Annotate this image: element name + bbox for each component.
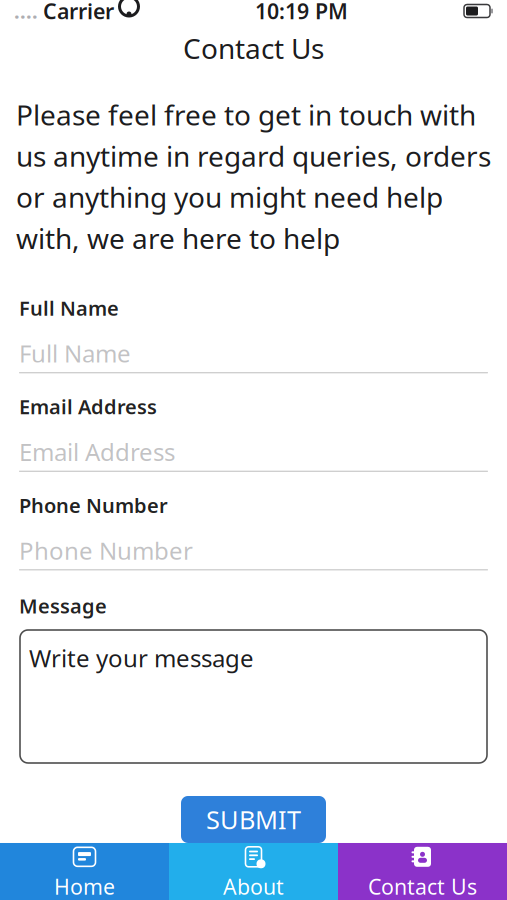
staticText: Contact Us — [368, 872, 477, 900]
staticText: Email Address — [19, 393, 157, 420]
staticText: Phone Number — [19, 534, 193, 566]
button[interactable]: Home — [0, 843, 169, 900]
staticText: .... — [14, 0, 38, 24]
button[interactable]: Email Address — [0, 420, 507, 472]
staticText: Write your message — [29, 642, 254, 674]
staticText: Carrier — [43, 0, 114, 25]
button[interactable]: Full Name — [0, 321, 507, 373]
staticText: 10:19 PM — [255, 0, 348, 25]
staticText: About — [223, 872, 284, 900]
staticText: Home — [54, 872, 115, 900]
button[interactable]: Contact Us — [338, 843, 507, 900]
staticText: Phone Number — [19, 492, 168, 518]
staticText: Message — [19, 592, 107, 619]
staticText: Please feel free to get in touch with us… — [16, 96, 491, 257]
button[interactable]: About — [169, 843, 338, 900]
staticText: SUBMIT — [206, 803, 301, 836]
staticText: Full Name — [19, 295, 119, 321]
staticText: Full Name — [19, 337, 131, 369]
button[interactable]: SUBMIT — [181, 796, 326, 843]
button[interactable]: Write your message — [20, 630, 487, 763]
staticText: Contact Us — [183, 29, 324, 67]
button[interactable]: Phone Number — [0, 518, 507, 570]
staticText: Email Address — [19, 436, 175, 468]
